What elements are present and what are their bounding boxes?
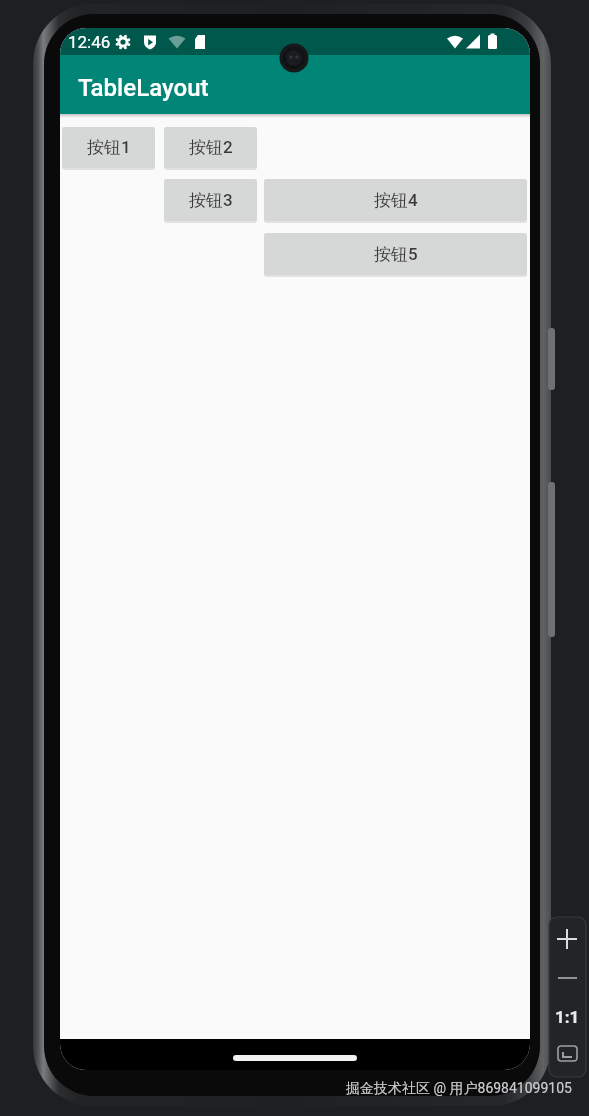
staticText: 12:46 <box>68 32 111 52</box>
staticText: 按钮2 <box>189 137 233 158</box>
staticText: 按钮5 <box>374 244 418 265</box>
button[interactable]: 按钮2 <box>164 127 257 168</box>
staticText: 按钮1 <box>87 137 131 158</box>
button[interactable]: 按钮5 <box>264 233 527 275</box>
staticText: 按钮4 <box>374 190 418 211</box>
button[interactable]: 按钮4 <box>264 179 527 221</box>
staticText: 1:1 <box>555 1007 580 1027</box>
button[interactable]: 按钮1 <box>62 127 155 168</box>
staticText: 掘金技术社区 @ 用户869841099105 <box>346 1080 572 1098</box>
staticText: 按钮3 <box>189 190 233 211</box>
staticText: TableLayout <box>78 74 209 102</box>
button[interactable]: 按钮3 <box>164 179 257 221</box>
